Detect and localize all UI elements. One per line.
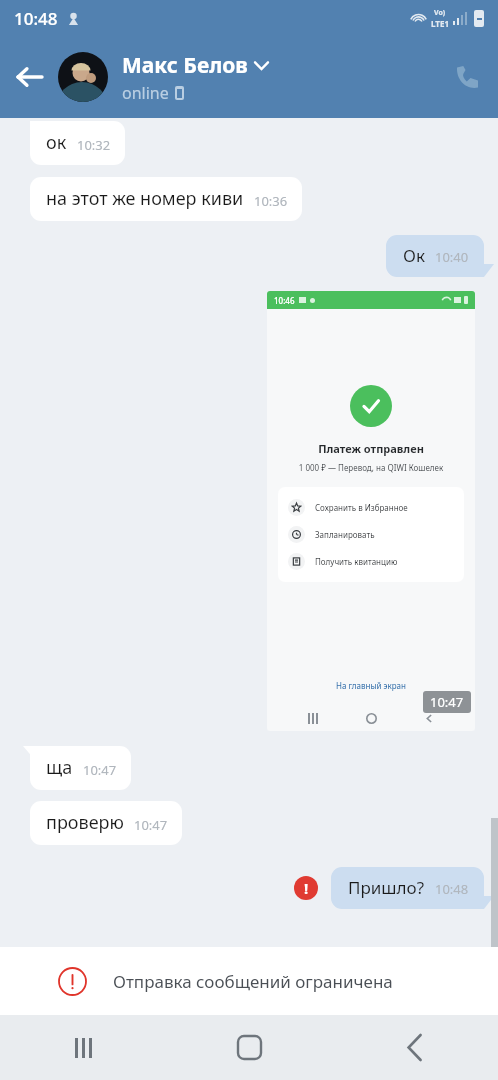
button[interactable]: на этот же номер киви bbox=[30, 177, 302, 221]
staticText: 10:48 bbox=[14, 7, 58, 30]
staticText: Отправка сообщений ограничена bbox=[113, 970, 393, 993]
staticText: 10:47 bbox=[83, 761, 117, 779]
button[interactable]: Запланировать bbox=[278, 521, 464, 548]
staticText: 10:36 bbox=[254, 192, 288, 210]
button[interactable]: 10:46 bbox=[267, 291, 475, 731]
staticText: Ок bbox=[403, 244, 425, 267]
button[interactable]: Avatar bbox=[58, 52, 108, 102]
button[interactable]: Call bbox=[436, 46, 498, 108]
staticText: Макс Белов bbox=[122, 51, 248, 80]
button[interactable]: Ок bbox=[386, 235, 484, 277]
staticText: 10:48 bbox=[435, 880, 469, 898]
button[interactable]: Home bbox=[166, 1015, 332, 1080]
staticText: ок bbox=[46, 130, 67, 155]
button[interactable]: Back bbox=[332, 1015, 498, 1080]
button[interactable]: Отправка сообщений ограничена bbox=[0, 947, 498, 1015]
button[interactable]: Пришло? bbox=[331, 867, 484, 909]
staticText: Запланировать bbox=[315, 529, 375, 540]
button[interactable]: проверю bbox=[30, 801, 182, 845]
staticText: LTE1 bbox=[431, 18, 449, 29]
button[interactable]: Макс Белов bbox=[122, 51, 436, 104]
staticText: online bbox=[122, 82, 169, 104]
staticText: Платеж отправлен bbox=[267, 441, 475, 456]
button[interactable]: ща bbox=[30, 746, 131, 790]
staticText: Сохранить в Избранное bbox=[315, 502, 408, 513]
staticText: На главный экран bbox=[267, 680, 475, 691]
staticText: 10:47 bbox=[430, 693, 464, 711]
button[interactable]: Back bbox=[0, 48, 58, 106]
button[interactable]: ок bbox=[30, 121, 125, 165]
button[interactable]: Recents bbox=[0, 1015, 166, 1080]
staticText: 10:46 bbox=[274, 295, 295, 306]
button[interactable]: Получить квитанцию bbox=[278, 548, 464, 575]
staticText: Vo) bbox=[434, 8, 446, 18]
staticText: Пришло? bbox=[348, 876, 425, 899]
staticText: проверю bbox=[46, 810, 124, 835]
staticText: 10:32 bbox=[77, 136, 111, 154]
staticText: 1 000 ₽ — Перевод, на QIWI Кошелек bbox=[267, 462, 475, 473]
staticText: ща bbox=[46, 755, 73, 780]
staticText: на этот же номер киви bbox=[46, 186, 244, 211]
button[interactable]: Сохранить в Избранное bbox=[278, 494, 464, 521]
staticText: 10:47 bbox=[134, 816, 168, 834]
staticText: ! bbox=[304, 878, 309, 898]
staticText: 10:40 bbox=[435, 248, 469, 266]
staticText: Получить квитанцию bbox=[315, 556, 398, 567]
button[interactable]: Message not sent bbox=[294, 876, 318, 900]
